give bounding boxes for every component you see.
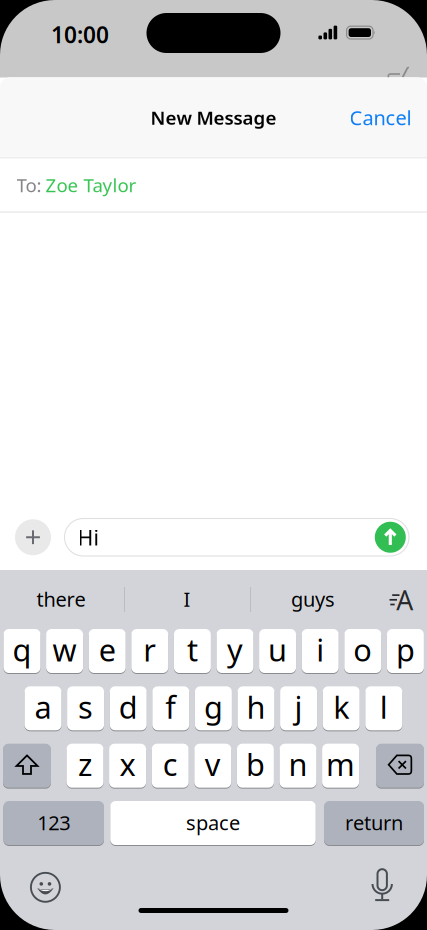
- button[interactable]: [31, 873, 60, 902]
- button[interactable]: a: [24, 686, 61, 731]
- staticText: guys: [291, 586, 335, 612]
- button[interactable]: r: [131, 628, 168, 673]
- button[interactable]: e: [89, 628, 126, 673]
- button[interactable]: A: [389, 592, 410, 608]
- staticText: y: [227, 629, 243, 670]
- button[interactable]: t: [174, 628, 211, 673]
- staticText: t: [187, 629, 198, 670]
- button[interactable]: d: [110, 686, 147, 731]
- staticText: m: [326, 744, 355, 784]
- staticText: g: [204, 686, 223, 727]
- staticText: a: [34, 686, 51, 727]
- staticText: 123: [37, 809, 70, 836]
- staticText: p: [396, 629, 415, 670]
- button[interactable]: h: [237, 686, 274, 731]
- button[interactable]: [375, 522, 406, 553]
- staticText: h: [246, 686, 265, 727]
- staticText: To:: [16, 173, 41, 197]
- staticText: v: [205, 744, 221, 784]
- staticText: return: [345, 809, 403, 836]
- button[interactable]: g: [195, 686, 232, 731]
- button[interactable]: s: [67, 686, 104, 731]
- staticText: w: [53, 629, 77, 670]
- button[interactable]: there: [2, 575, 120, 623]
- button[interactable]: b: [237, 743, 274, 788]
- staticText: there: [36, 586, 85, 612]
- button[interactable]: space: [110, 800, 316, 845]
- staticText: Hi: [77, 523, 99, 551]
- staticText: k: [333, 686, 349, 727]
- staticText: i: [316, 629, 324, 670]
- staticText: o: [353, 629, 372, 670]
- button[interactable]: [3, 743, 51, 788]
- button[interactable]: j: [280, 686, 317, 731]
- staticText: I: [183, 586, 190, 612]
- button[interactable]: [372, 869, 392, 901]
- button[interactable]: Hi: [64, 518, 409, 556]
- staticText: space: [186, 809, 240, 836]
- button[interactable]: 123: [3, 800, 104, 845]
- staticText: b: [246, 744, 265, 784]
- button[interactable]: To:: [0, 158, 427, 211]
- button[interactable]: return: [324, 800, 424, 845]
- button[interactable]: [376, 743, 424, 788]
- staticText: x: [120, 744, 136, 784]
- staticText: j: [295, 686, 303, 727]
- staticText: c: [163, 744, 178, 784]
- button[interactable]: l: [365, 686, 402, 731]
- staticText: 10:00: [51, 19, 109, 49]
- button[interactable]: u: [259, 628, 296, 673]
- button[interactable]: z: [66, 743, 103, 788]
- button[interactable]: x: [109, 743, 146, 788]
- staticText: u: [268, 629, 287, 670]
- button[interactable]: w: [46, 628, 83, 673]
- button[interactable]: i: [302, 628, 339, 673]
- button[interactable]: y: [216, 628, 253, 673]
- staticText: Cancel: [349, 104, 411, 131]
- button[interactable]: k: [323, 686, 360, 731]
- staticText: l: [380, 686, 388, 727]
- staticText: d: [119, 686, 138, 727]
- button[interactable]: v: [194, 743, 231, 788]
- staticText: s: [78, 686, 93, 727]
- staticText: q: [12, 629, 31, 670]
- staticText: n: [288, 744, 307, 784]
- button[interactable]: Cancel: [349, 104, 411, 131]
- staticText: Zoe Taylor: [45, 173, 136, 197]
- button[interactable]: p: [387, 628, 424, 673]
- button[interactable]: guys: [254, 575, 372, 623]
- staticText: e: [99, 629, 116, 670]
- button[interactable]: f: [152, 686, 189, 731]
- button[interactable]: q: [3, 628, 40, 673]
- staticText: r: [143, 629, 156, 670]
- staticText: A: [396, 582, 413, 618]
- staticText: z: [78, 744, 92, 784]
- button[interactable]: [15, 519, 51, 555]
- staticText: New Message: [150, 105, 276, 130]
- button[interactable]: I: [128, 575, 246, 623]
- button[interactable]: n: [279, 743, 316, 788]
- button[interactable]: o: [344, 628, 381, 673]
- staticText: f: [165, 686, 176, 727]
- button[interactable]: m: [322, 743, 359, 788]
- button[interactable]: c: [152, 743, 189, 788]
